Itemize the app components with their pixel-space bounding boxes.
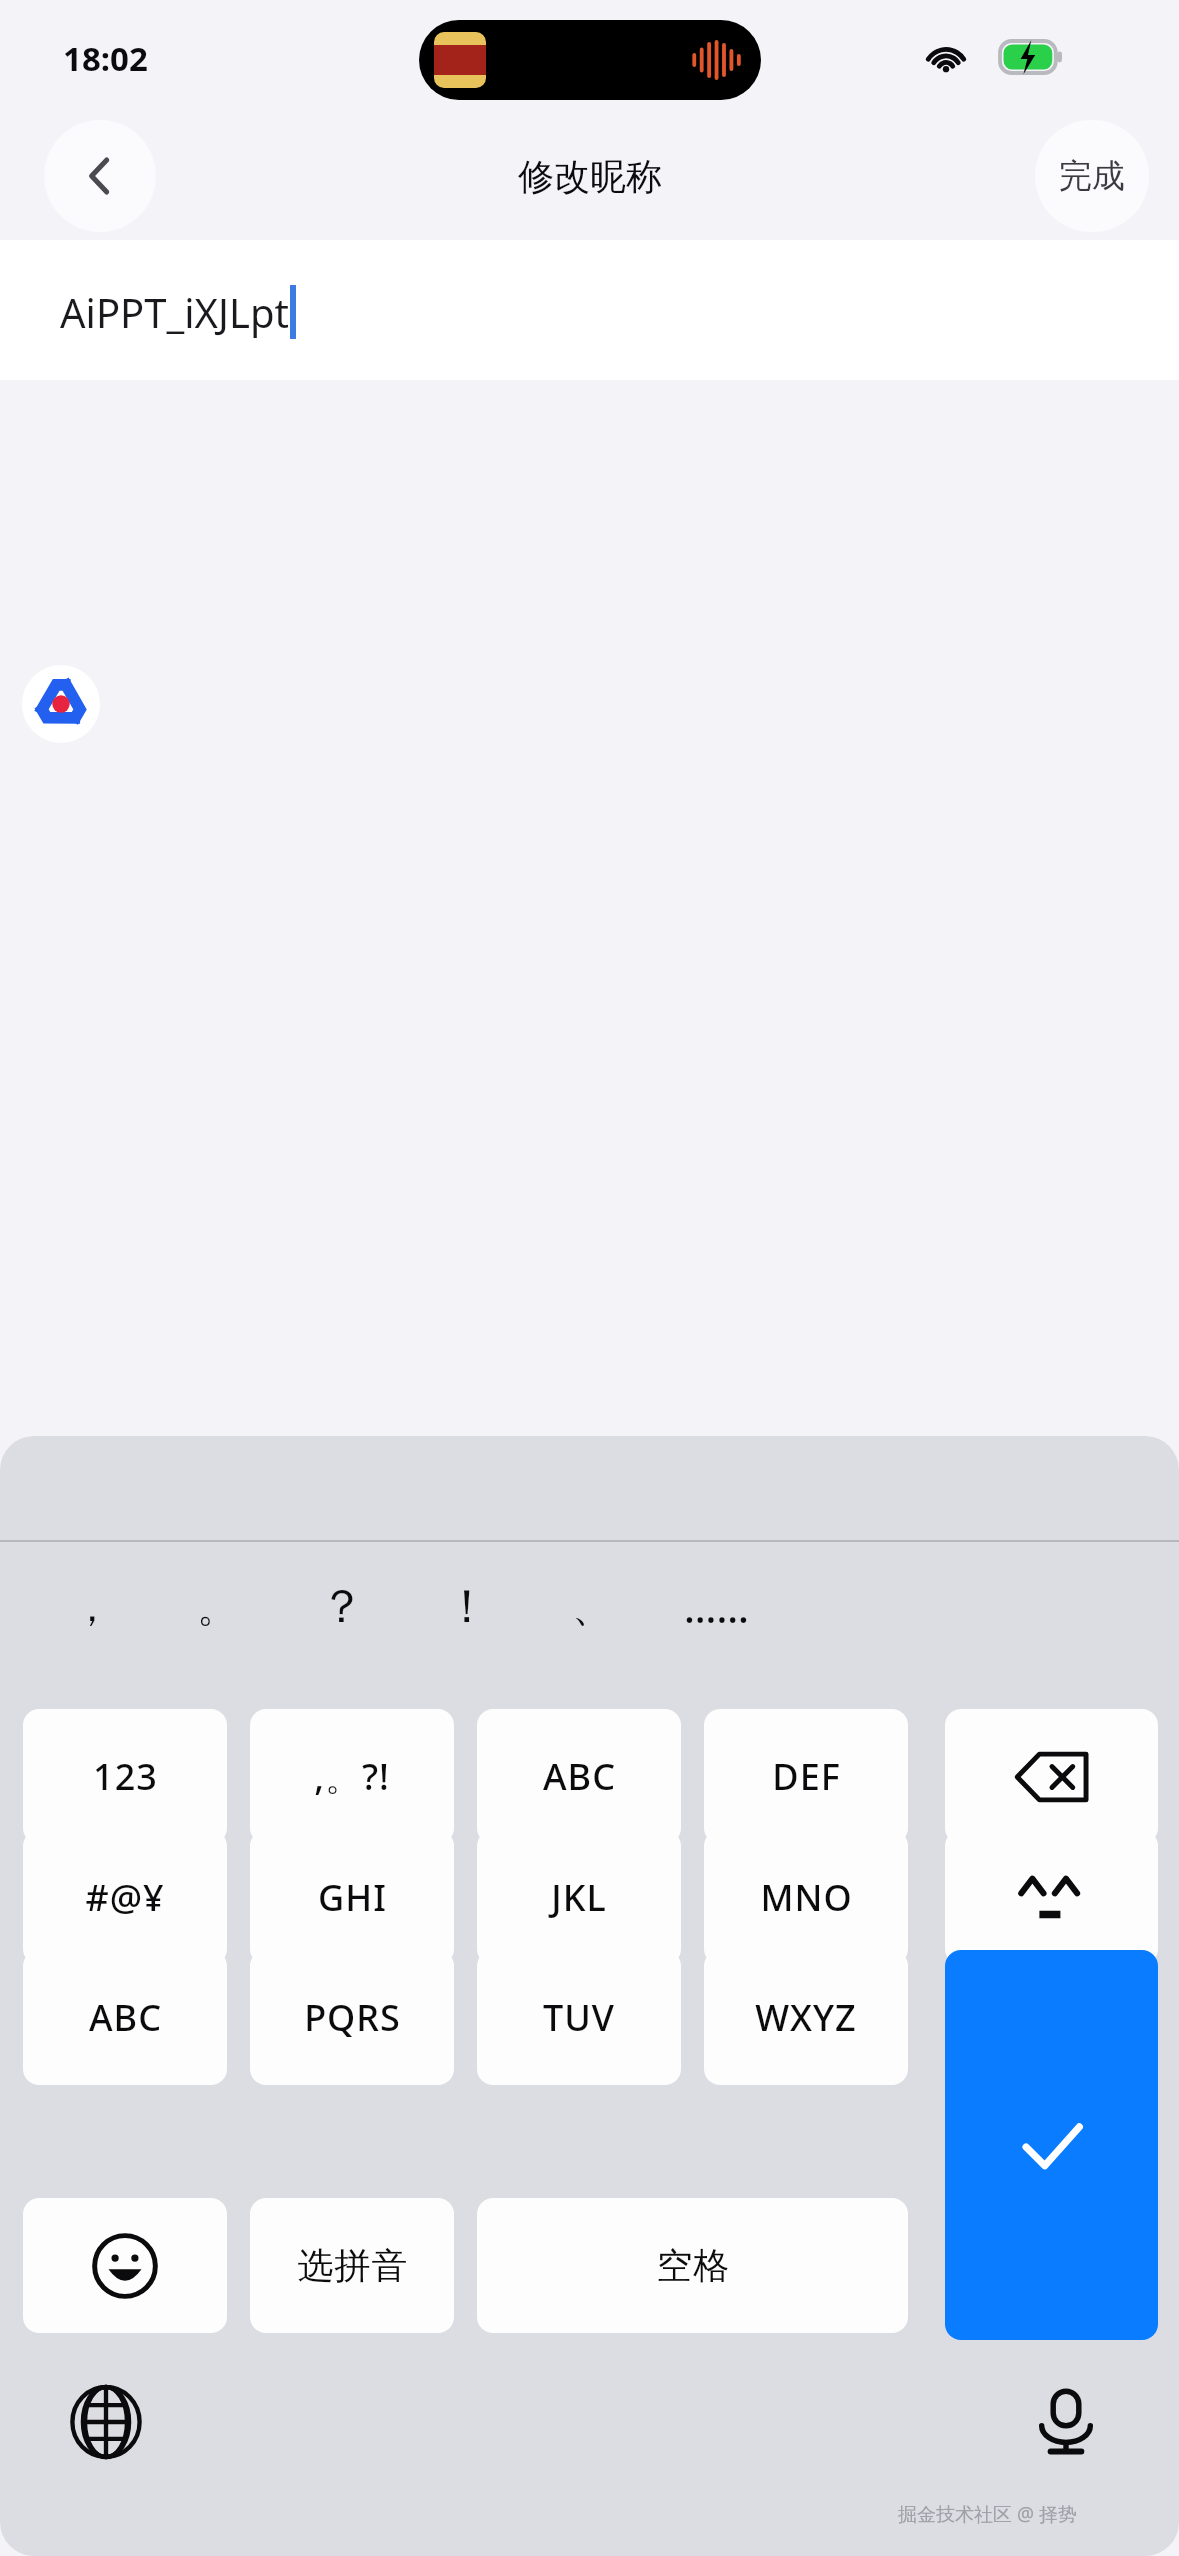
staticText: GHI bbox=[318, 1873, 387, 1922]
button[interactable]: 、 bbox=[529, 1546, 654, 1668]
button[interactable]: Back bbox=[44, 120, 156, 232]
button[interactable]: Enter bbox=[945, 1950, 1158, 2340]
button[interactable]: Voice input bbox=[1020, 2376, 1112, 2468]
button[interactable]: AiPPT_iXJLpt bbox=[0, 240, 1179, 380]
button[interactable]: Delete bbox=[945, 1709, 1158, 1844]
staticText: 修改昵称 bbox=[518, 154, 662, 199]
button[interactable]: Switch keyboard bbox=[60, 2376, 152, 2468]
button[interactable]: MNO bbox=[704, 1830, 908, 1965]
staticText: ABC bbox=[543, 1752, 616, 1801]
staticText: ？ bbox=[319, 1578, 365, 1636]
button[interactable]: 。 bbox=[154, 1546, 279, 1668]
staticText: 空格 bbox=[656, 2243, 730, 2288]
button[interactable]: ABC bbox=[23, 1950, 227, 2085]
button[interactable]: 选拼音 bbox=[250, 2198, 454, 2333]
button[interactable]: 空格 bbox=[477, 2198, 908, 2333]
staticText: ， bbox=[72, 1582, 112, 1632]
staticText: JKL bbox=[551, 1873, 607, 1922]
staticText: 掘金技术社区 @ 择势 bbox=[898, 2501, 1077, 2527]
staticText: DEF bbox=[772, 1752, 841, 1801]
staticText: ！ bbox=[444, 1578, 490, 1636]
staticText: 18:02 bbox=[63, 36, 148, 81]
button[interactable]: ABC bbox=[477, 1709, 681, 1844]
button[interactable]: Emoji bbox=[23, 2198, 227, 2333]
button[interactable]: ？ bbox=[279, 1546, 404, 1668]
staticText: MNO bbox=[760, 1873, 853, 1922]
staticText: AiPPT_iXJLpt bbox=[60, 285, 289, 339]
button[interactable]: 完成 bbox=[1035, 120, 1149, 232]
staticText: 123 bbox=[93, 1752, 158, 1801]
staticText: WXYZ bbox=[755, 1993, 857, 2042]
staticText: ABC bbox=[89, 1993, 162, 2042]
button[interactable]: ！ bbox=[404, 1546, 529, 1668]
staticText: 选拼音 bbox=[297, 2243, 408, 2288]
staticText: 。 bbox=[197, 1582, 237, 1632]
staticText: ,。?! bbox=[314, 1752, 390, 1801]
button[interactable]: ,。?! bbox=[250, 1709, 454, 1844]
button[interactable]: TUV bbox=[477, 1950, 681, 2085]
button[interactable]: ， bbox=[30, 1546, 154, 1668]
staticText: 、 bbox=[572, 1582, 612, 1632]
button[interactable]: Kaomoji bbox=[945, 1830, 1158, 1965]
button[interactable]: GHI bbox=[250, 1830, 454, 1965]
button[interactable]: 123 bbox=[23, 1709, 227, 1844]
button[interactable]: DEF bbox=[704, 1709, 908, 1844]
button[interactable]: WXYZ bbox=[704, 1950, 908, 2085]
button[interactable]: PQRS bbox=[250, 1950, 454, 2085]
staticText: #@¥ bbox=[85, 1873, 165, 1922]
button[interactable]: …… bbox=[654, 1546, 779, 1668]
staticText: PQRS bbox=[304, 1993, 401, 2042]
staticText: 完成 bbox=[1059, 155, 1125, 197]
button[interactable]: #@¥ bbox=[23, 1830, 227, 1965]
button[interactable]: App logo bbox=[22, 665, 100, 743]
button[interactable]: JKL bbox=[477, 1830, 681, 1965]
staticText: …… bbox=[684, 1580, 749, 1634]
staticText: TUV bbox=[543, 1993, 615, 2042]
